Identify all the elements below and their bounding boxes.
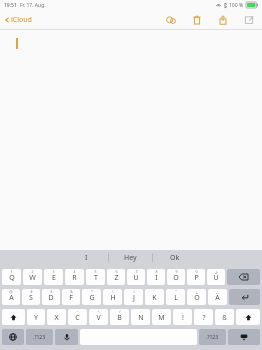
staticText: 1 (10, 269, 13, 274)
button[interactable]: & (62, 289, 80, 305)
staticText: W (29, 273, 36, 283)
button[interactable]: 4 (65, 269, 84, 285)
button[interactable]: 7 (127, 269, 145, 285)
staticText: O (173, 273, 179, 283)
button[interactable]: Compose (242, 13, 256, 27)
button[interactable]: . (194, 309, 213, 325)
staticText: B (117, 313, 122, 323)
staticText: iCloud (11, 15, 32, 25)
staticText: 9 (175, 269, 178, 274)
staticText: C (75, 313, 80, 323)
button[interactable]: ) (124, 289, 143, 305)
staticText: Z (114, 273, 119, 283)
button[interactable]: ⬆ (2, 309, 25, 325)
staticText: T (94, 273, 98, 283)
button[interactable]: .?123 (199, 329, 226, 345)
staticText: Hey (124, 253, 137, 263)
button[interactable]: ⌫ (227, 269, 260, 285)
staticText: R (72, 273, 77, 283)
button[interactable]: / (110, 309, 129, 325)
button[interactable]: ; (208, 289, 227, 305)
staticText: I (85, 253, 88, 263)
button[interactable]: 1 (2, 269, 21, 285)
button[interactable]: Ok (153, 250, 196, 265)
staticText: 2 (31, 269, 34, 274)
button[interactable]: .?123 (26, 329, 53, 345)
staticText: J (133, 293, 135, 303)
button[interactable]: Share (216, 13, 230, 27)
button[interactable]: 0 (187, 269, 205, 285)
staticText: I (155, 273, 158, 283)
staticText: .?123 (33, 334, 46, 341)
button[interactable]: # (22, 289, 40, 305)
button[interactable]: iCloud (4, 15, 32, 25)
button[interactable]: Hide keyboard (228, 329, 260, 345)
button[interactable]: ( (103, 289, 122, 305)
staticText: 7 (135, 269, 138, 274)
button[interactable]: ⬆ (236, 309, 260, 325)
staticText: , (182, 309, 183, 314)
staticText: 19:51 (4, 2, 17, 9)
staticText: P (194, 273, 199, 283)
button[interactable]: 9 (167, 269, 185, 285)
button[interactable]: I (65, 250, 108, 265)
staticText: Y (34, 313, 38, 323)
button[interactable]: " (166, 289, 185, 305)
staticText: _ (35, 309, 37, 314)
staticText: U (133, 273, 139, 283)
staticText: - (224, 309, 226, 314)
staticText: Ok (170, 253, 180, 263)
button[interactable]: 8 (147, 269, 165, 285)
button[interactable]: 5 (86, 269, 105, 285)
button[interactable]: € (42, 289, 60, 305)
button[interactable]: + (207, 269, 225, 285)
button[interactable]: : (131, 309, 150, 325)
staticText: F (69, 293, 73, 303)
staticText: D (48, 293, 54, 303)
button[interactable]: - (215, 309, 234, 325)
button[interactable]: 3 (44, 269, 63, 285)
staticText: ( (112, 289, 114, 294)
staticText: + (215, 269, 218, 274)
staticText: 8 (155, 269, 158, 274)
button[interactable]: \ (89, 309, 108, 325)
button[interactable]: Delete (190, 13, 204, 27)
staticText: & (70, 289, 73, 294)
staticText: ! (182, 313, 184, 323)
button[interactable]: 6 (107, 269, 125, 285)
staticText: A (9, 293, 14, 303)
staticText: Q (9, 273, 15, 283)
staticText: ~ (76, 309, 79, 314)
staticText: N (138, 313, 144, 323)
button[interactable]: ↵ (229, 289, 260, 305)
staticText: 0 (195, 269, 198, 274)
button[interactable]: * (82, 289, 101, 305)
staticText: V (96, 313, 101, 323)
button[interactable]: ; (152, 309, 171, 325)
staticText: 100 % (229, 2, 244, 9)
button[interactable]: ~ (68, 309, 87, 325)
button[interactable]: ' (145, 289, 164, 305)
button[interactable]: @ (2, 289, 20, 305)
button[interactable]: Dictation (55, 329, 78, 345)
button[interactable]: : (187, 289, 206, 305)
staticText: K (152, 293, 157, 303)
button[interactable]: - (47, 309, 66, 325)
button[interactable]: 2 (23, 269, 42, 285)
staticText: : (140, 309, 141, 314)
staticText: S (29, 293, 33, 303)
staticText: : (196, 289, 197, 294)
staticText: ; (161, 309, 162, 314)
staticText: 6 (115, 269, 118, 274)
staticText: # (30, 289, 33, 294)
button[interactable]: Reply (164, 13, 178, 27)
button[interactable]: , (173, 309, 192, 325)
staticText: * (91, 289, 93, 294)
staticText: ) (133, 289, 135, 294)
button[interactable]: _ (27, 309, 45, 325)
staticText: M (158, 313, 165, 323)
button[interactable]: Globe (2, 329, 24, 345)
staticText: . (203, 309, 204, 314)
button[interactable]: Hey (109, 250, 152, 265)
